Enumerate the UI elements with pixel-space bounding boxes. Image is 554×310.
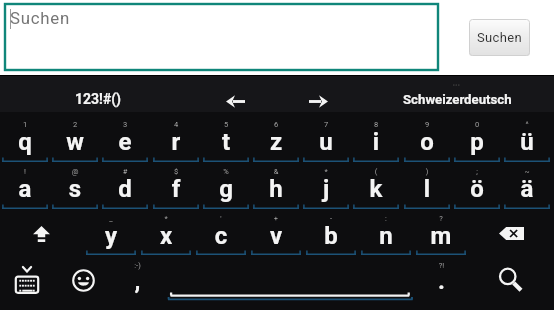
staticText: m	[416, 222, 466, 250]
button[interactable]: &	[253, 159, 299, 207]
staticText: ^	[504, 120, 550, 129]
button[interactable]: Schweizerdeutsch	[397, 86, 517, 112]
staticText: @	[52, 167, 98, 176]
staticText: ~	[504, 167, 550, 176]
staticText: w	[52, 128, 98, 156]
staticText: *	[303, 167, 349, 176]
button[interactable]: 8	[353, 112, 399, 160]
staticText: 6	[253, 120, 299, 129]
staticText: 1	[2, 120, 48, 129]
button[interactable]: Suchen	[4, 3, 439, 71]
staticText: j	[303, 175, 349, 203]
button[interactable]: #	[102, 159, 148, 207]
button[interactable]: 4	[153, 112, 199, 160]
staticText: ü	[504, 128, 550, 156]
button[interactable]: ;	[454, 159, 500, 207]
button[interactable]: *	[141, 206, 191, 253]
staticText: 8	[353, 120, 399, 129]
staticText: #	[102, 167, 148, 176]
button[interactable]: Search	[482, 253, 534, 310]
staticText: t	[203, 128, 249, 156]
staticText: p	[454, 128, 500, 156]
staticText: )	[404, 167, 450, 176]
button[interactable]: :-)	[112, 253, 163, 310]
button[interactable]: Shift	[12, 207, 70, 254]
staticText: c	[196, 222, 246, 250]
staticText: v	[251, 222, 301, 250]
staticText: h	[253, 175, 299, 203]
staticText: f	[153, 175, 199, 203]
staticText: !	[2, 167, 48, 176]
staticText: 2	[52, 120, 98, 129]
staticText: a	[2, 175, 48, 203]
button[interactable]: :	[361, 206, 411, 253]
button[interactable]: ?	[416, 206, 466, 253]
staticText: '	[196, 214, 246, 223]
staticText: ö	[454, 175, 500, 203]
button[interactable]: %	[203, 159, 249, 207]
staticText: ?!	[416, 261, 467, 270]
staticText: ä	[504, 175, 550, 203]
staticText: y	[86, 222, 136, 250]
staticText: Suchen	[10, 8, 70, 28]
staticText: o	[404, 128, 450, 156]
button[interactable]: 1	[2, 112, 48, 160]
button[interactable]: 9	[404, 112, 450, 160]
button[interactable]: Emoji	[57, 253, 109, 305]
staticText: l	[404, 175, 450, 203]
staticText: Suchen	[477, 30, 523, 45]
staticText: +	[251, 214, 301, 223]
button[interactable]: 6	[253, 112, 299, 160]
staticText: 5	[203, 120, 249, 129]
button[interactable]: 5	[203, 112, 249, 160]
button[interactable]: @	[52, 159, 98, 207]
staticText: ,	[112, 267, 163, 295]
staticText: 7	[303, 120, 349, 129]
button[interactable]: '	[196, 206, 246, 253]
staticText: 3	[102, 120, 148, 129]
button[interactable]: *	[303, 159, 349, 207]
button[interactable]: 3	[102, 112, 148, 160]
button[interactable]: Delete	[484, 207, 542, 254]
staticText: 9	[404, 120, 450, 129]
button[interactable]: (	[353, 159, 399, 207]
staticText: i	[353, 128, 399, 156]
button[interactable]: Move cursor left	[226, 95, 245, 108]
button[interactable]: ^	[504, 112, 550, 160]
staticText: Schweizerdeutsch	[403, 92, 512, 107]
staticText: .	[416, 267, 467, 295]
button[interactable]: 2	[52, 112, 98, 160]
staticText: z	[253, 128, 299, 156]
button[interactable]: +	[251, 206, 301, 253]
staticText: n	[361, 222, 411, 250]
button[interactable]: 0	[454, 112, 500, 160]
button[interactable]: 123!#()	[69, 86, 127, 112]
button[interactable]: $	[153, 159, 199, 207]
staticText: g	[203, 175, 249, 203]
staticText: 123!#()	[75, 91, 121, 107]
button[interactable]: Move cursor right	[309, 95, 328, 108]
button[interactable]: -	[306, 206, 356, 253]
button[interactable]: Hide keyboard	[2, 253, 52, 305]
button[interactable]: ?!	[416, 253, 467, 310]
button[interactable]: 7	[303, 112, 349, 160]
staticText: ;	[454, 167, 500, 176]
staticText: :	[361, 214, 411, 223]
staticText: :-)	[112, 261, 163, 270]
button[interactable]: Suchen	[469, 19, 530, 56]
staticText: $	[153, 167, 199, 176]
button[interactable]: !	[2, 159, 48, 207]
staticText: u	[303, 128, 349, 156]
staticText: x	[141, 222, 191, 250]
button[interactable]: )	[404, 159, 450, 207]
staticText: -	[306, 214, 356, 223]
button[interactable]: ~	[504, 159, 550, 207]
button[interactable]: _	[86, 206, 136, 253]
staticText: %	[203, 167, 249, 176]
staticText: *	[141, 214, 191, 223]
staticText: s	[52, 175, 98, 203]
staticText: b	[306, 222, 356, 250]
staticText: &	[253, 167, 299, 176]
staticText: 0	[454, 120, 500, 129]
button[interactable]: Space	[164, 253, 416, 310]
